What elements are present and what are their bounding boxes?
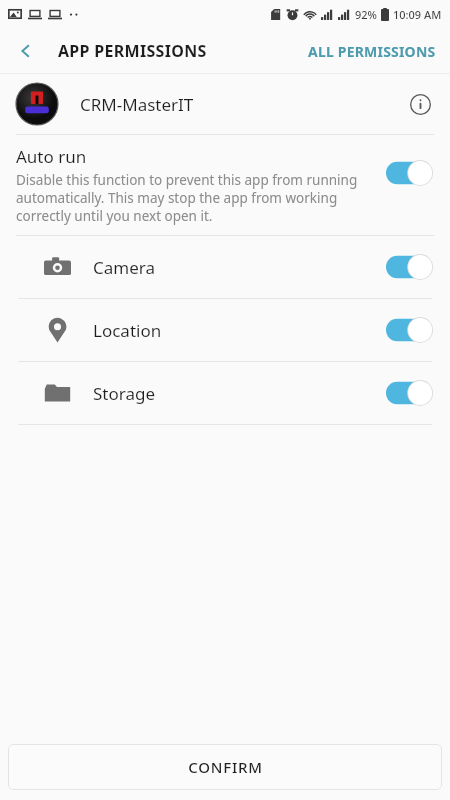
button[interactable]: App info	[398, 82, 442, 126]
button[interactable]: Toggle	[386, 316, 436, 344]
button[interactable]: Location	[0, 299, 450, 361]
button[interactable]: Camera	[0, 236, 450, 298]
staticText: CONFIRM	[188, 757, 263, 777]
button[interactable]: CONFIRM	[8, 744, 442, 790]
button[interactable]: CRM-MasterIT	[0, 74, 450, 134]
button[interactable]: Auto run	[0, 135, 450, 235]
button[interactable]: Toggle	[386, 159, 436, 187]
staticText: APP PERMISSIONS	[58, 40, 207, 62]
staticText: ALL PERMISSIONS	[308, 42, 436, 61]
button[interactable]: Storage	[0, 362, 450, 424]
staticText: Storage	[93, 382, 156, 405]
staticText: 92%	[355, 7, 377, 22]
staticText: CRM-MasterIT	[80, 93, 194, 116]
button[interactable]: Toggle	[386, 379, 436, 407]
button[interactable]: Back	[6, 31, 46, 71]
staticText: Disable this function to prevent this ap…	[16, 171, 378, 225]
staticText: 10:09 AM	[393, 7, 442, 22]
staticText: Auto run	[16, 145, 87, 168]
button[interactable]: Toggle	[386, 253, 436, 281]
button[interactable]: ALL PERMISSIONS	[294, 34, 450, 69]
staticText: Location	[93, 319, 162, 342]
staticText: Camera	[93, 256, 155, 279]
